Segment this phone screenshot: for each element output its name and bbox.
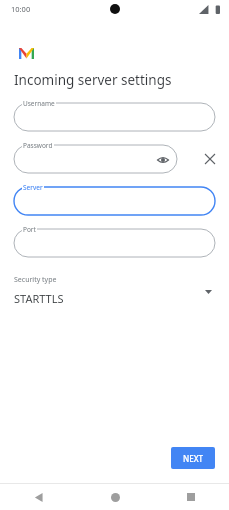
staticText: NEXT [183, 453, 204, 464]
button[interactable]: Server [14, 187, 215, 215]
button[interactable]: Back [0, 484, 77, 510]
button[interactable]: Security type [0, 275, 229, 306]
button[interactable]: Password [14, 145, 177, 173]
button[interactable]: Username [14, 103, 215, 131]
button[interactable]: NEXT [171, 447, 215, 469]
staticText: Port [23, 225, 36, 234]
staticText: 10:00 [11, 4, 31, 14]
button[interactable]: Show password [156, 153, 169, 166]
button[interactable]: Recent apps [153, 484, 229, 510]
staticText: Incoming server settings [14, 71, 172, 89]
button[interactable]: Clear password [199, 148, 221, 170]
staticText: Server [23, 183, 43, 192]
button[interactable]: Home [77, 484, 153, 510]
staticText: Username [23, 99, 55, 108]
staticText: Security type [14, 275, 57, 285]
button[interactable]: Port [14, 229, 215, 257]
staticText: Password [23, 141, 53, 150]
staticText: STARTTLS [14, 291, 64, 306]
